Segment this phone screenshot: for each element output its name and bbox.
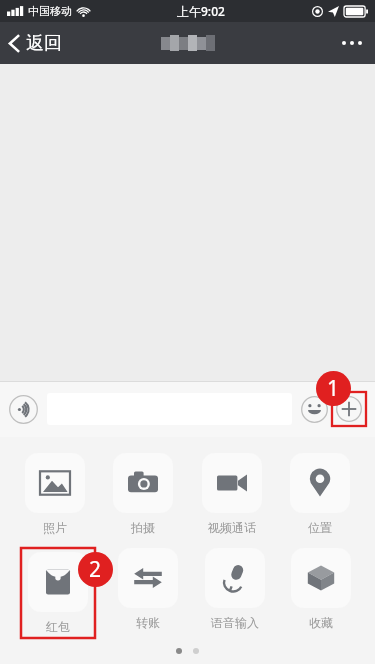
button[interactable]: 拍摄 bbox=[110, 453, 176, 535]
staticText: 中国移动 bbox=[28, 4, 72, 18]
staticText: 收藏 bbox=[309, 615, 333, 630]
staticText: 上午9:02 bbox=[177, 3, 225, 19]
staticText: 位置 bbox=[308, 520, 332, 535]
button[interactable]: 语音输入 bbox=[202, 548, 268, 630]
staticText: 语音输入 bbox=[211, 615, 259, 630]
button[interactable]: 位置 bbox=[287, 453, 353, 535]
button[interactable]: 视频通话 bbox=[199, 453, 265, 535]
button[interactable]: More functions bbox=[332, 392, 366, 426]
button[interactable]: Emoji bbox=[301, 396, 328, 423]
button[interactable]: 转账 bbox=[115, 548, 181, 630]
button[interactable]: 收藏 bbox=[288, 548, 354, 630]
staticText: 照片 bbox=[43, 520, 67, 535]
button[interactable]: 返回 bbox=[0, 22, 72, 64]
button[interactable]: 红包 bbox=[25, 552, 91, 634]
staticText: 红包 bbox=[46, 619, 70, 634]
staticText: 视频通话 bbox=[208, 520, 256, 535]
button[interactable]: More options bbox=[329, 22, 375, 64]
button[interactable]: 照片 bbox=[22, 453, 88, 535]
button[interactable]: Voice message bbox=[9, 395, 38, 424]
staticText: 1 bbox=[327, 374, 340, 403]
staticText: 转账 bbox=[136, 615, 160, 630]
staticText: 拍摄 bbox=[131, 520, 155, 535]
staticText: 返回 bbox=[26, 32, 62, 55]
staticText: 2 bbox=[89, 555, 102, 584]
